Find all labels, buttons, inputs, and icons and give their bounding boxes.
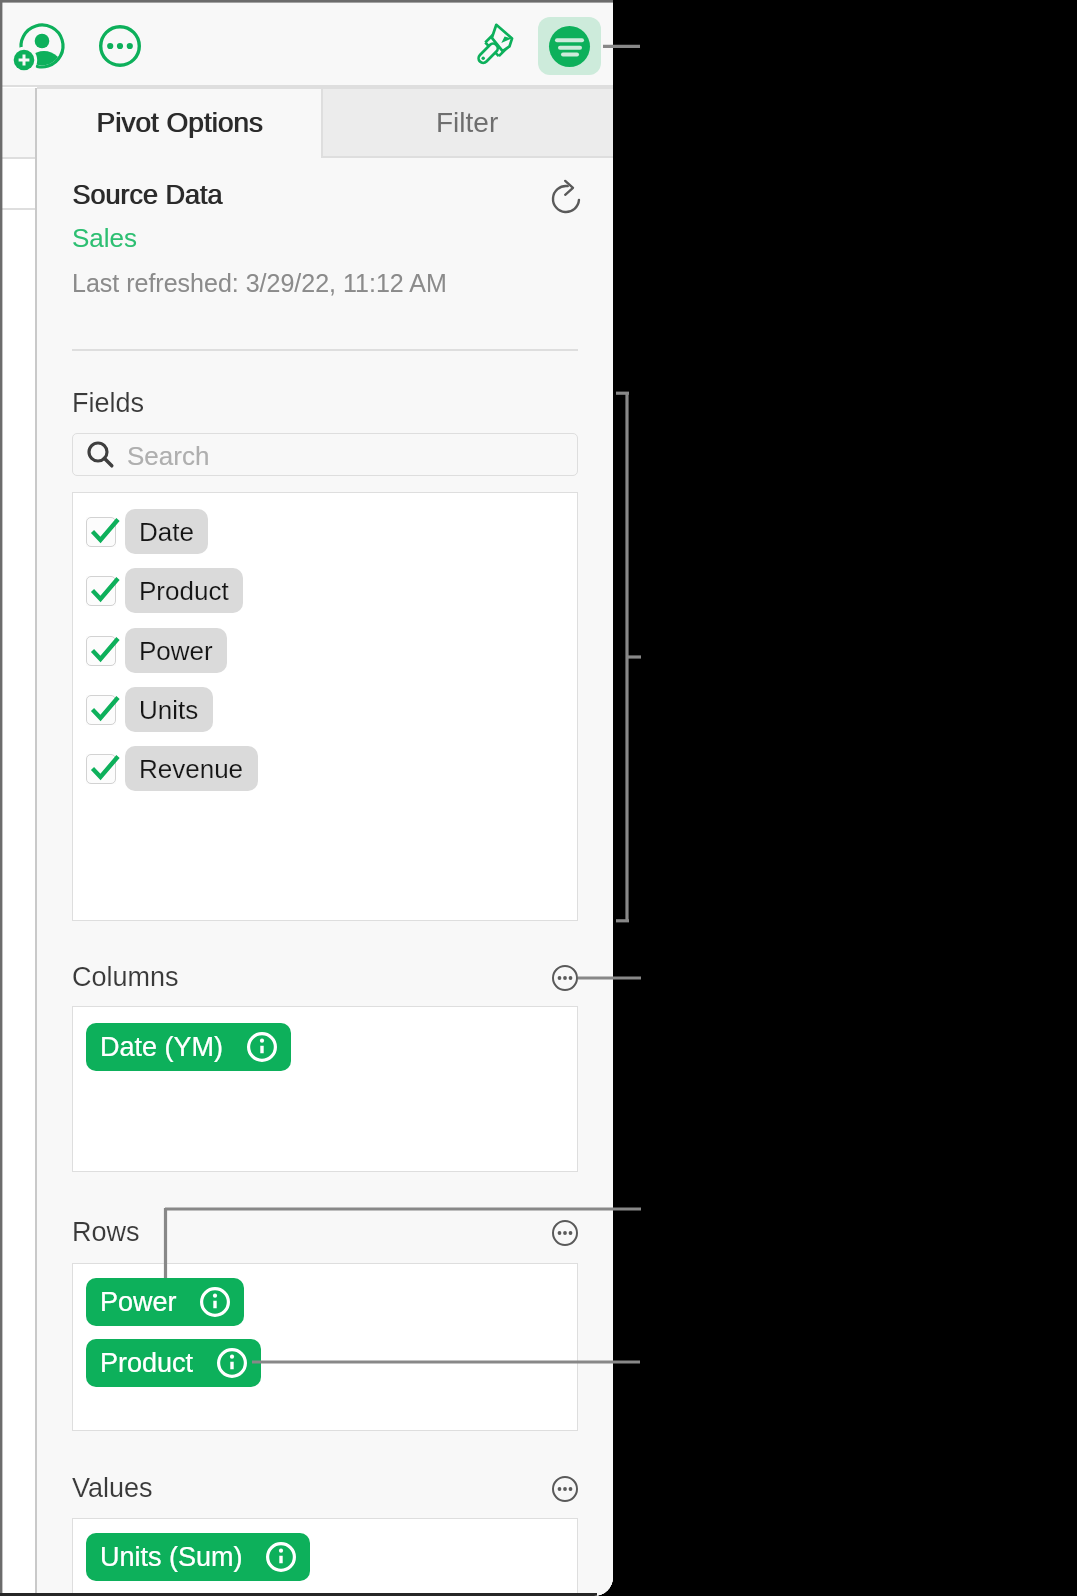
staticText: Power <box>139 636 213 665</box>
staticText: Last refreshed: 3/29/22, 11:12 AM <box>72 269 447 297</box>
button[interactable]: Organize <box>538 17 601 75</box>
staticText: Product <box>139 576 229 605</box>
staticText: Product <box>100 1348 194 1378</box>
button[interactable]: Search <box>72 433 578 476</box>
staticText: Values <box>72 1473 153 1503</box>
staticText: Fields <box>72 388 145 418</box>
button[interactable]: Revenue <box>125 746 258 791</box>
staticText: Date <box>139 517 194 546</box>
staticText: Units <box>139 695 199 724</box>
button[interactable]: More options <box>94 20 146 72</box>
button[interactable]: Toggle Units <box>86 695 116 725</box>
staticText: Columns <box>72 962 179 992</box>
button[interactable]: Power <box>86 1278 244 1326</box>
button[interactable]: Add collaborator <box>8 14 76 82</box>
button[interactable]: Rows options <box>547 1215 583 1251</box>
button[interactable]: Units (Sum) <box>86 1533 310 1581</box>
staticText: Pivot Options <box>96 107 263 138</box>
button[interactable]: Toggle Date <box>86 517 116 547</box>
staticText: Source Data <box>72 180 223 210</box>
button[interactable]: Refresh <box>543 176 589 222</box>
button[interactable]: Toggle Product <box>86 576 116 606</box>
button[interactable]: Date (YM) <box>86 1023 291 1071</box>
button[interactable]: Product <box>86 1339 261 1387</box>
staticText: Date (YM) <box>100 1032 224 1062</box>
button[interactable]: Units <box>125 687 213 732</box>
button[interactable]: Power <box>125 628 227 673</box>
staticText: Source Data <box>73 180 224 210</box>
button[interactable]: Columns options <box>547 960 583 996</box>
staticText: Search <box>127 441 210 470</box>
staticText: Rows <box>72 1217 140 1247</box>
button[interactable]: Product <box>125 568 243 613</box>
staticText: Filter <box>436 107 499 138</box>
button[interactable]: Filter <box>322 87 613 158</box>
button[interactable]: Toggle Power <box>86 636 116 666</box>
staticText: Power <box>100 1287 177 1317</box>
staticText: Units (Sum) <box>100 1542 243 1572</box>
staticText: Revenue <box>139 754 244 783</box>
staticText: Pivot Options <box>97 107 264 138</box>
staticText: Sales <box>72 223 138 252</box>
button[interactable]: Toggle Revenue <box>86 754 116 784</box>
button[interactable]: Date <box>125 509 208 554</box>
button[interactable]: Values options <box>547 1471 583 1507</box>
button[interactable]: Format <box>470 20 520 70</box>
button[interactable]: Pivot Options <box>37 87 322 158</box>
